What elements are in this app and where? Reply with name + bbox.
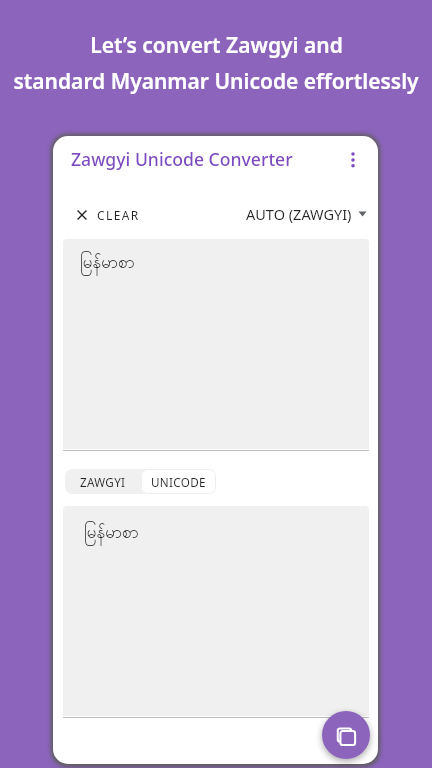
- staticText: မြန်မာစာ: [84, 521, 139, 546]
- staticText: AUTO (ZAWGYI): [246, 204, 352, 224]
- button[interactable]: မြန်မာစာ: [63, 506, 369, 716]
- staticText: Zawgyi Unicode Converter: [71, 147, 293, 171]
- staticText: မြန်မာစာ: [80, 251, 135, 276]
- button[interactable]: CLEAR: [71, 201, 147, 229]
- staticText: UNICODE: [151, 474, 206, 490]
- staticText: CLEAR: [97, 207, 140, 223]
- button[interactable]: AUTO (ZAWGYI): [239, 198, 374, 230]
- staticText: ZAWGYI: [80, 474, 126, 490]
- staticText: Let’s convert Zawgyi and: [90, 31, 343, 60]
- button[interactable]: More options: [336, 143, 370, 177]
- button[interactable]: Copy: [322, 711, 370, 759]
- button[interactable]: UNICODE: [141, 469, 216, 494]
- button[interactable]: ZAWGYI: [65, 469, 141, 494]
- button[interactable]: မြန်မာစာ: [63, 239, 369, 449]
- staticText: standard Myanmar Unicode effortlessly: [13, 67, 419, 96]
